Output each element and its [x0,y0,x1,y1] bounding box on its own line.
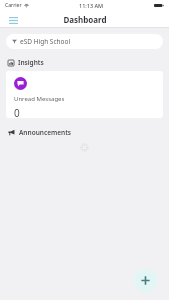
button[interactable]: Unread Messages [6,71,163,118]
staticText: eSD High School [20,37,71,46]
button[interactable]: eSD High School [6,34,163,49]
staticText: Carrier [5,2,22,9]
staticText: Announcements [19,128,72,137]
button[interactable]: Add [134,269,157,292]
staticText: Dashboard [63,14,107,25]
button[interactable]: Open navigation menu [6,13,20,27]
staticText: Unread Messages [14,95,65,103]
staticText: 0 [14,106,20,118]
staticText: 11:13 AM [79,2,104,9]
staticText: Insights [18,58,44,67]
